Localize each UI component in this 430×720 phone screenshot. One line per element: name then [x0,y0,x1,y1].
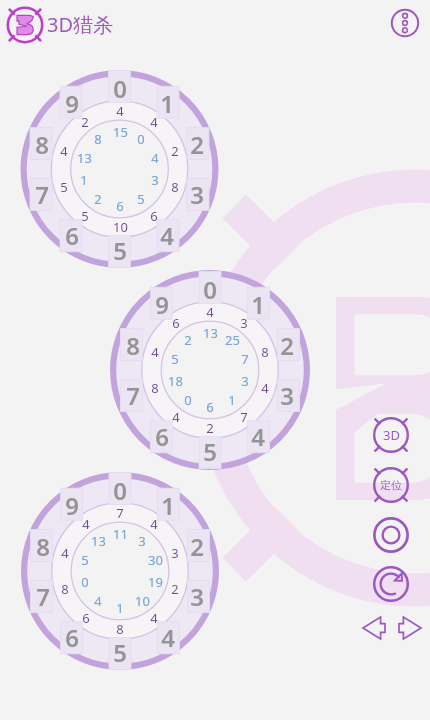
button[interactable]: 0 [128,126,154,152]
button[interactable]: 3 [142,167,168,193]
button[interactable]: 4 [141,511,167,537]
button[interactable]: 3 [271,379,303,411]
button[interactable]: 4 [163,404,189,430]
button[interactable]: 4 [242,420,274,452]
button[interactable]: 18 [162,368,188,394]
button[interactable]: 4 [142,145,168,171]
button[interactable]: 8 [162,174,188,200]
button[interactable]: 3 [181,178,213,210]
button[interactable]: 1 [107,595,133,621]
button[interactable]: 2 [162,138,188,164]
button[interactable]: 6 [107,193,133,219]
button[interactable]: 8 [52,576,78,602]
button[interactable]: 10 [107,214,133,240]
button[interactable]: 13 [71,145,97,171]
staticText: 6 [65,621,79,653]
button[interactable]: 2 [175,327,201,353]
button[interactable]: 6 [73,605,99,631]
button[interactable]: 5 [162,346,188,372]
button[interactable]: 5 [128,186,154,212]
button[interactable]: 3 [181,580,213,612]
button[interactable]: 4 [197,299,223,325]
button[interactable]: 4 [73,511,99,537]
button[interactable]: 7 [107,500,133,526]
button[interactable]: 6 [56,219,88,251]
button[interactable]: 4 [142,339,168,365]
button[interactable]: 4 [52,540,78,566]
button[interactable]: 3 [162,540,188,566]
button[interactable]: 2 [72,109,98,135]
button[interactable]: 8 [26,128,58,160]
button[interactable]: 30 [142,547,168,573]
staticText: 3D猎杀 [47,11,114,38]
button[interactable]: 0 [175,387,201,413]
button[interactable]: 2 [181,128,213,160]
button[interactable]: 7 [232,346,258,372]
button[interactable]: 9 [146,288,178,320]
button[interactable]: 5 [72,203,98,229]
button[interactable]: 5 [51,174,77,200]
button[interactable]: 7 [27,580,59,612]
button[interactable]: 9 [56,87,88,119]
button[interactable]: 4 [151,219,183,251]
button[interactable]: 6 [197,394,223,420]
button[interactable]: 1 [219,387,245,413]
button[interactable]: 0 [194,273,226,305]
button[interactable]: 6 [163,310,189,336]
button[interactable]: 25 [219,327,245,353]
button[interactable]: 8 [85,126,111,152]
button[interactable]: Next [399,617,421,639]
button[interactable]: 6 [56,621,88,653]
button[interactable]: 2 [162,576,188,602]
button[interactable]: 11 [107,521,133,547]
button[interactable]: App logo [3,3,47,47]
button[interactable]: 4 [152,621,184,653]
button[interactable]: 7 [26,178,58,210]
button[interactable]: 5 [104,636,136,668]
button[interactable]: 9 [56,489,88,521]
button[interactable]: 1 [151,87,183,119]
button[interactable]: 13 [197,320,223,346]
button[interactable]: 13 [85,528,111,554]
button[interactable]: 3 [232,368,258,394]
button[interactable]: 8 [142,375,168,401]
button[interactable]: 4 [85,588,111,614]
button[interactable]: Record [369,513,413,557]
button[interactable]: 6 [141,203,167,229]
button[interactable]: 5 [194,435,226,467]
button[interactable]: Refresh [369,562,413,606]
button[interactable]: More options [390,8,420,38]
button[interactable]: 0 [104,72,136,104]
button[interactable]: 3D view [368,412,414,458]
button[interactable]: 8 [252,339,278,365]
button[interactable]: 2 [197,415,223,441]
button[interactable]: 1 [71,167,97,193]
button[interactable]: 7 [117,379,149,411]
button[interactable]: 8 [107,616,133,642]
button[interactable]: 1 [152,489,184,521]
button[interactable]: 4 [107,98,133,124]
button[interactable]: 0 [104,474,136,506]
button[interactable]: 6 [146,420,178,452]
button[interactable]: 8 [117,329,149,361]
button[interactable]: 2 [181,530,213,562]
button[interactable]: 2 [271,329,303,361]
button[interactable]: 5 [72,547,98,573]
button[interactable]: 15 [107,119,133,145]
button[interactable]: 19 [142,569,168,595]
button[interactable]: 2 [85,186,111,212]
button[interactable]: 0 [72,569,98,595]
button[interactable]: Locate [368,462,414,508]
button[interactable]: 3 [129,528,155,554]
button[interactable]: 4 [252,375,278,401]
button[interactable]: 1 [242,288,274,320]
button[interactable]: 4 [141,605,167,631]
button[interactable]: Previous [363,617,385,639]
button[interactable]: 10 [129,588,155,614]
button[interactable]: 5 [104,234,136,266]
button[interactable]: 4 [51,138,77,164]
button[interactable]: 7 [231,404,257,430]
button[interactable]: 4 [141,109,167,135]
button[interactable]: 8 [27,530,59,562]
button[interactable]: 3 [231,310,257,336]
